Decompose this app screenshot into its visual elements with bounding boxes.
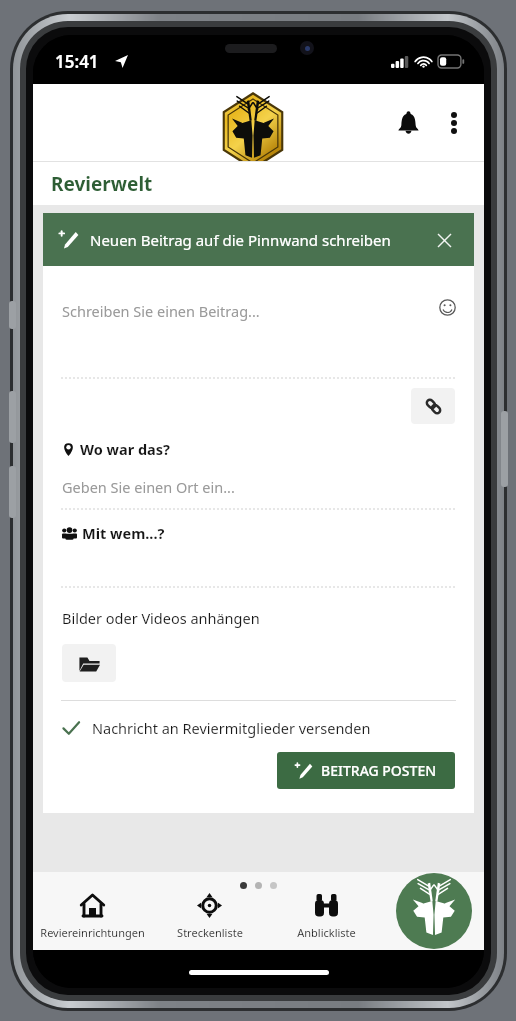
button[interactable]: Nachricht an Reviermitglieder versenden xyxy=(43,701,474,752)
button[interactable]: Streckenliste xyxy=(151,891,268,942)
button[interactable]: Geben Sie einen Ort ein... xyxy=(62,477,235,497)
staticText: 15:41 xyxy=(55,50,99,73)
button[interactable]: Neuen Beitrag auf die Pinnwand schreiben xyxy=(43,213,474,266)
button[interactable]: Schreiben Sie einen Beitrag... xyxy=(62,301,260,321)
button[interactable]: BEITRAG POSTEN xyxy=(277,752,455,789)
staticText: Neuen Beitrag auf die Pinnwand schreiben xyxy=(90,230,430,250)
button[interactable]: Emoji einfügen xyxy=(434,294,460,320)
button[interactable]: Datei auswählen xyxy=(62,644,116,682)
button[interactable]: Reviereinrichtungen xyxy=(33,891,151,942)
button[interactable]: Anblickliste xyxy=(268,891,385,942)
staticText: Reviereinrichtungen xyxy=(40,925,145,940)
staticText: BEITRAG POSTEN xyxy=(321,761,437,780)
staticText: Anblickliste xyxy=(297,925,356,940)
button[interactable]: Mehr Optionen xyxy=(432,101,476,145)
staticText: Mit wem...? xyxy=(82,523,165,543)
button[interactable]: Logo xyxy=(218,92,288,170)
staticText: Nachricht an Reviermitglieder versenden xyxy=(92,718,371,738)
button[interactable]: Link einfügen xyxy=(411,388,455,424)
staticText: Streckenliste xyxy=(177,925,243,940)
staticText: Wo war das? xyxy=(80,439,170,459)
staticText: Revierwelt xyxy=(51,171,153,197)
button[interactable]: Revier xyxy=(396,873,472,949)
staticText: Bilder oder Videos anhängen xyxy=(62,608,260,628)
button[interactable]: Schließen xyxy=(430,226,458,254)
button[interactable]: Benachrichtigungen xyxy=(384,99,432,147)
